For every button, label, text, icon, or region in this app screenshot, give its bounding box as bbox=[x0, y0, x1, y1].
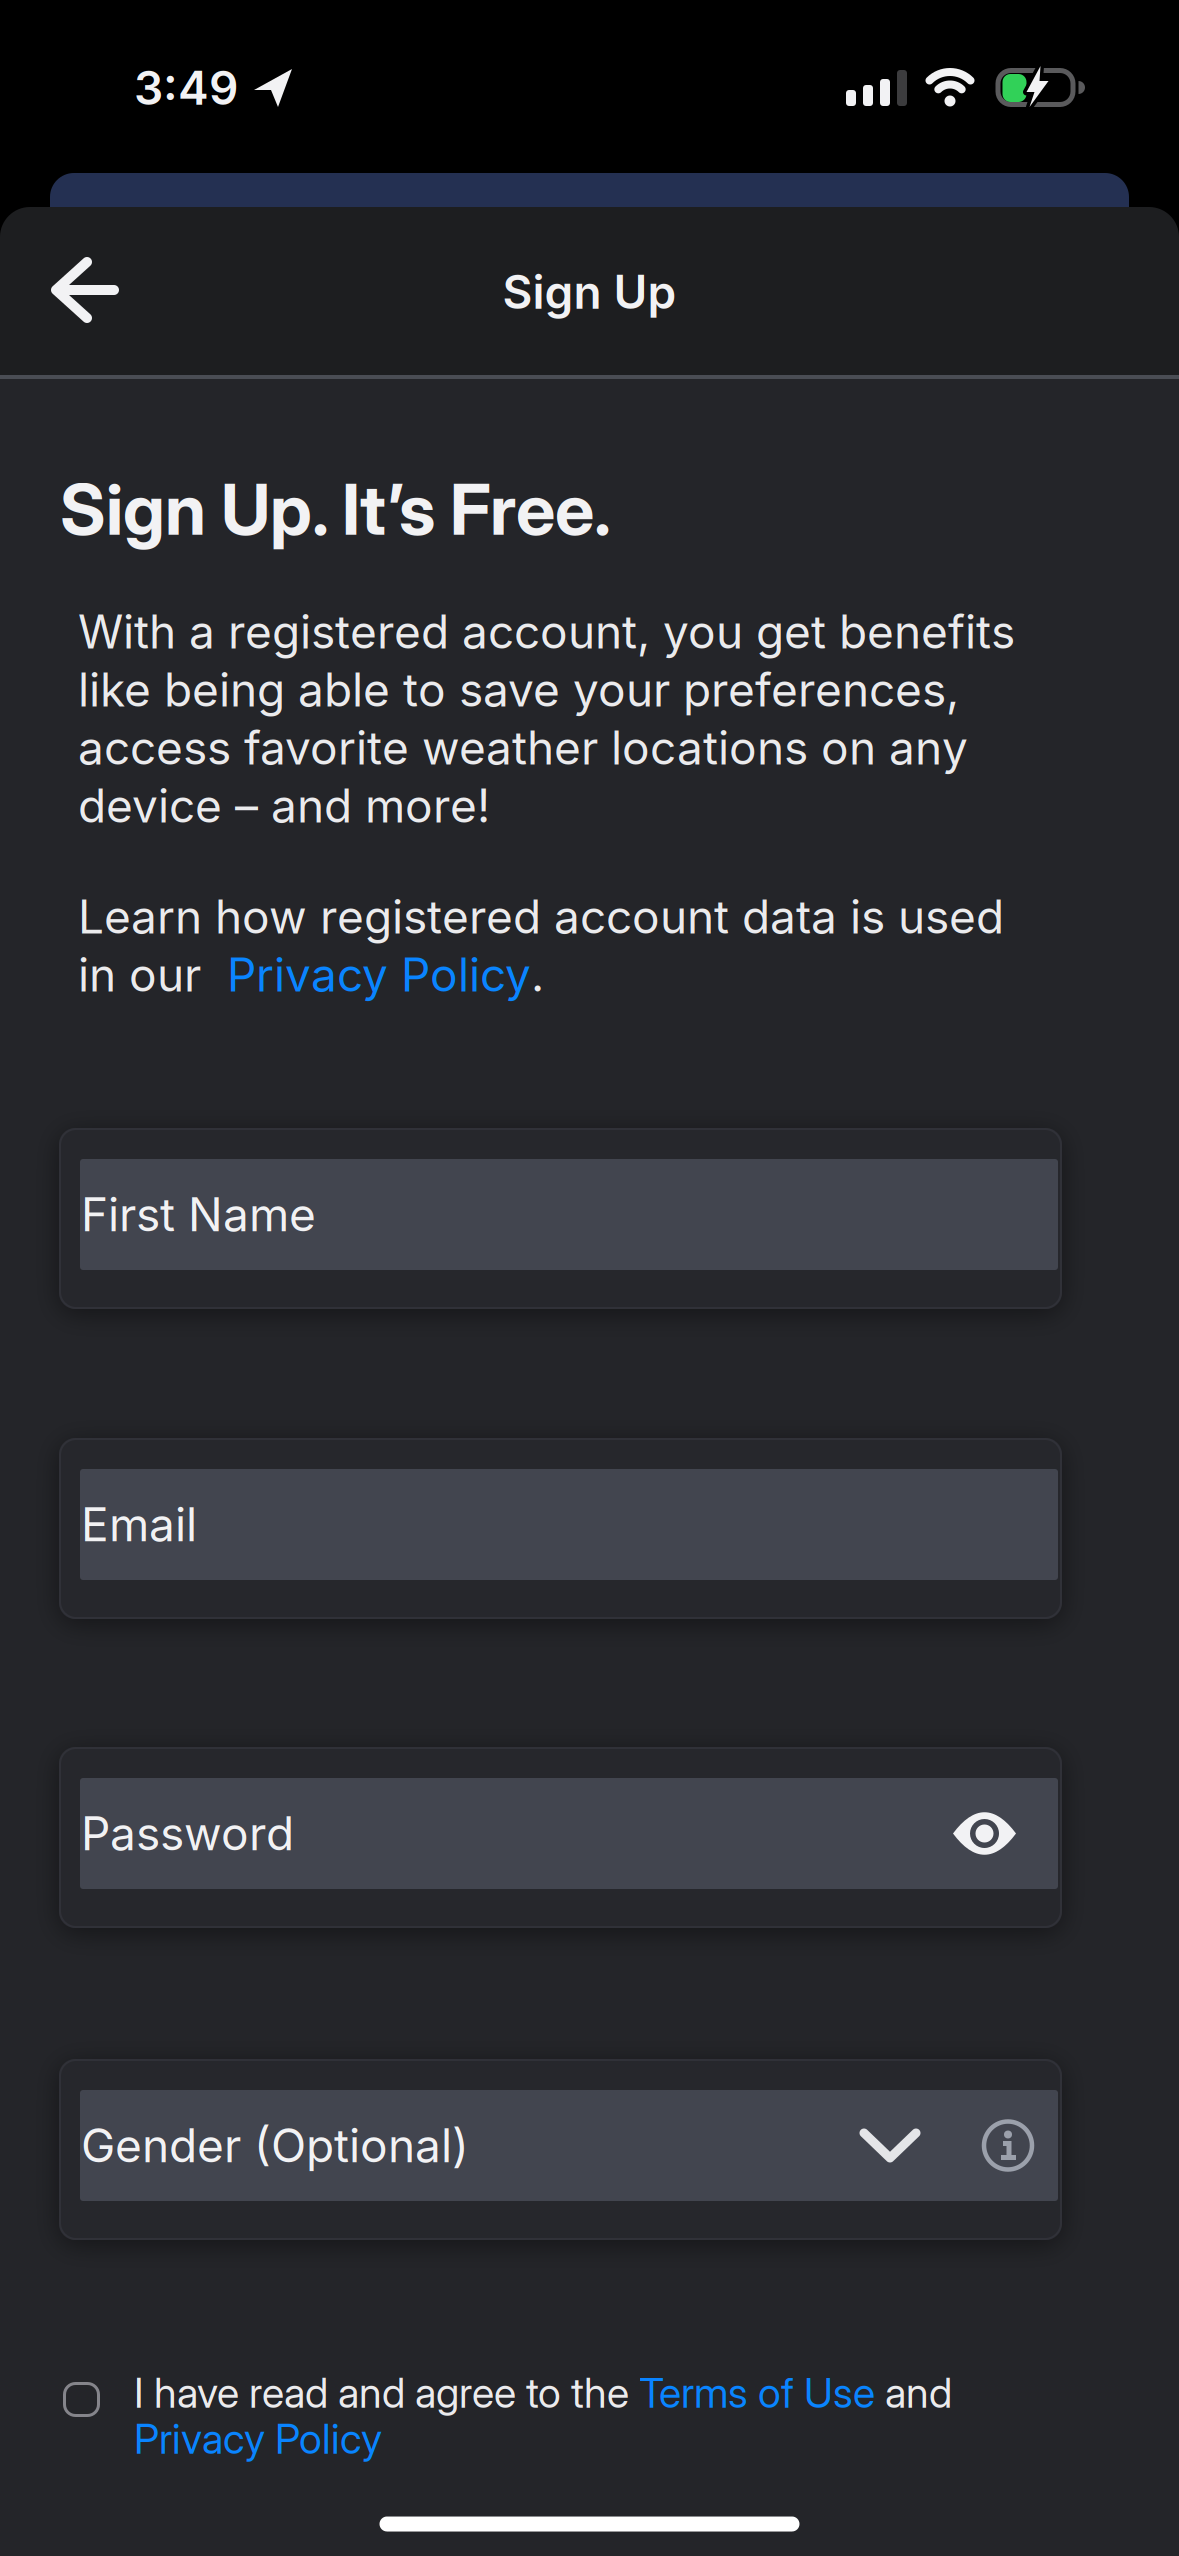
staticText: . bbox=[531, 947, 544, 1003]
staticText: Email bbox=[81, 1497, 197, 1552]
staticText: Sign Up. It’s Free. bbox=[60, 467, 611, 552]
staticText: Terms of Use bbox=[639, 2368, 875, 2418]
staticText: device – and more! bbox=[78, 778, 490, 834]
staticText: in our bbox=[78, 947, 227, 1003]
button[interactable]: First Name bbox=[59, 1128, 1062, 1309]
button[interactable]: I have read and agree to the Terms of Us… bbox=[53, 2372, 110, 2427]
staticText: Privacy Policy bbox=[134, 2414, 382, 2464]
staticText: Privacy Policy bbox=[227, 947, 531, 1003]
staticText: First Name bbox=[81, 1187, 316, 1242]
staticText: With a registered account, you get benef… bbox=[78, 604, 1015, 660]
button[interactable]: Gender (Optional) bbox=[59, 2059, 1062, 2240]
button[interactable]: Email bbox=[59, 1438, 1062, 1619]
staticText: Gender (Optional) bbox=[81, 2118, 469, 2173]
staticText: access favorite weather locations on any bbox=[78, 720, 968, 776]
staticText: and bbox=[875, 2368, 952, 2418]
staticText: Learn how registered account data is use… bbox=[78, 889, 1004, 945]
staticText: Password bbox=[81, 1806, 294, 1861]
staticText: I have read and agree to the bbox=[134, 2368, 639, 2418]
button[interactable]: Terms of Use bbox=[639, 2368, 875, 2418]
staticText: like being able to save your preferences… bbox=[78, 662, 959, 718]
staticText: Sign Up bbox=[502, 264, 676, 320]
staticText: 3:49 bbox=[134, 60, 238, 116]
button[interactable]: Privacy Policy bbox=[134, 2414, 382, 2464]
button[interactable]: Password bbox=[59, 1747, 1062, 1928]
button[interactable]: Privacy Policy bbox=[227, 947, 531, 1003]
button[interactable]: Back bbox=[36, 242, 134, 338]
